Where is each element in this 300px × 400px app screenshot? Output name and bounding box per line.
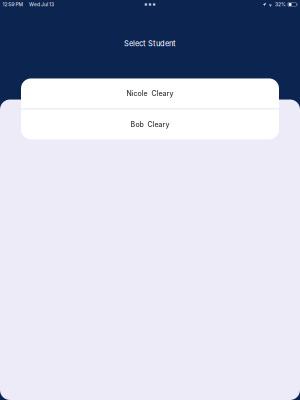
staticText: 12:59 PM [2,1,23,7]
staticText: 32% [275,1,286,7]
staticText: Select Student [124,39,176,48]
button[interactable]: Nicole Cleary [21,78,279,108]
staticText: Nicole Cleary [126,89,173,98]
button[interactable]: Bob Cleary [21,109,279,139]
staticText: Wed Jul 13 [29,1,54,7]
staticText: Bob Cleary [130,120,169,129]
